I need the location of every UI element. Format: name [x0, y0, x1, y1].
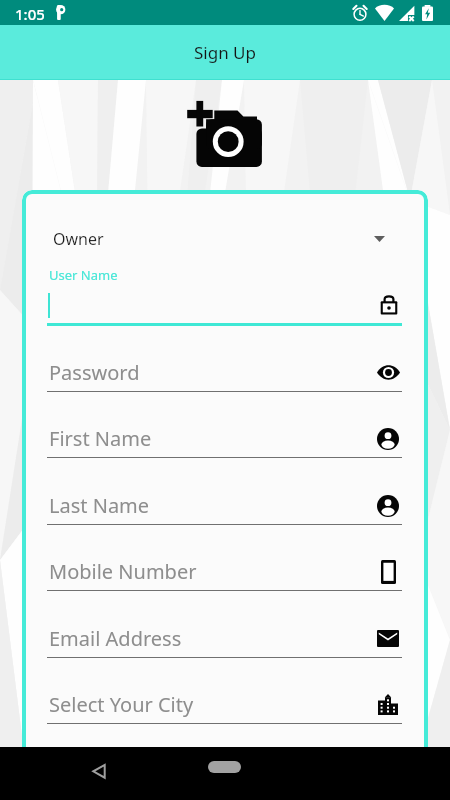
staticText: 1:05 — [15, 4, 45, 24]
button[interactable]: Password — [47, 355, 402, 401]
button[interactable]: First Name — [47, 421, 402, 467]
button[interactable]: Email Address — [47, 621, 402, 667]
button[interactable]: Sign Up — [0, 25, 450, 80]
button[interactable]: Add photo — [187, 100, 263, 168]
button[interactable]: Mobile Number — [47, 554, 402, 600]
staticText: Mobile Number — [49, 558, 197, 585]
staticText: Password — [49, 359, 140, 386]
button[interactable]: Select Your City — [47, 687, 402, 733]
staticText: Last Name — [49, 492, 150, 519]
button[interactable]: Owner — [47, 222, 402, 256]
button[interactable]: User Name — [47, 265, 402, 327]
button[interactable]: Last Name — [47, 488, 402, 534]
staticText: Sign Up — [194, 41, 256, 64]
button[interactable]: Back — [78, 753, 120, 795]
staticText: User Name — [49, 266, 118, 284]
staticText: Email Address — [49, 625, 182, 652]
button[interactable]: Home — [208, 761, 241, 773]
staticText: Select Your City — [49, 691, 194, 718]
staticText: First Name — [49, 425, 152, 452]
staticText: Owner — [53, 228, 104, 250]
